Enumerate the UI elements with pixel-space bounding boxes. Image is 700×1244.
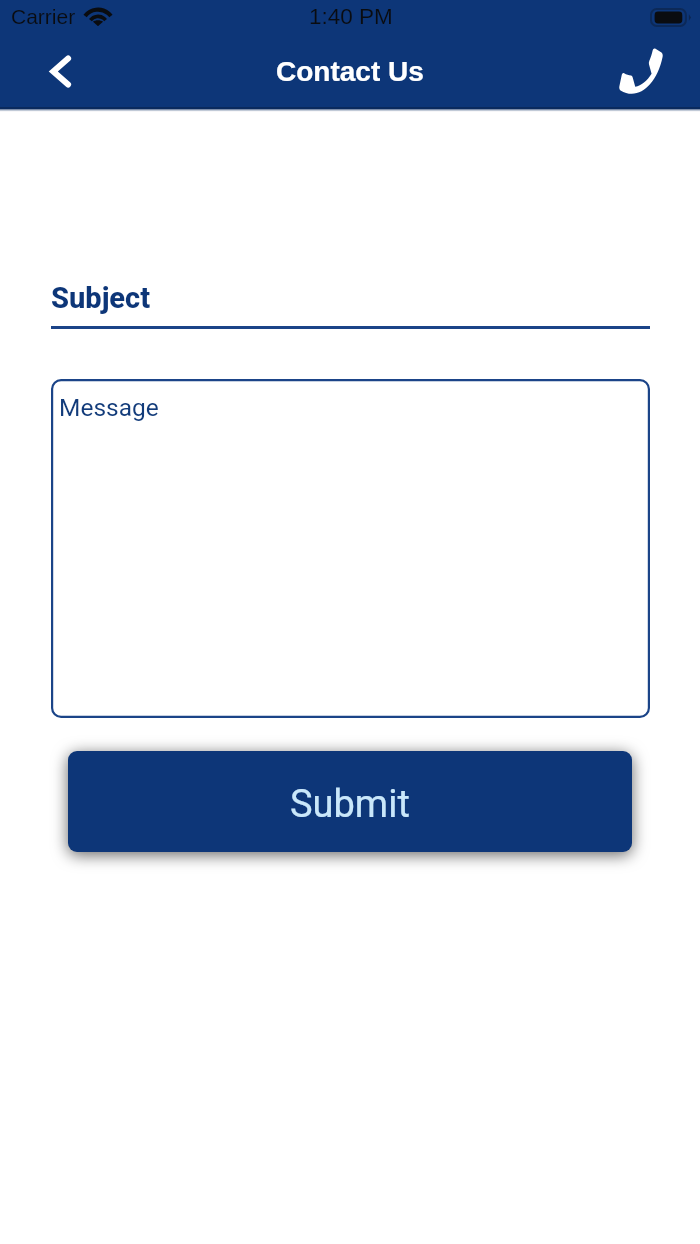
staticText: Message [59, 393, 159, 422]
staticText: Submit [290, 782, 410, 827]
button[interactable]: Submit [68, 751, 632, 852]
staticText: Subject [51, 281, 151, 315]
staticText: Contact Us [276, 56, 424, 87]
button[interactable]: Call [613, 43, 669, 99]
staticText: 1:40 PM [309, 4, 393, 29]
staticText: Carrier [11, 5, 76, 28]
button[interactable]: Back [34, 45, 86, 97]
button[interactable]: Message [51, 379, 650, 718]
